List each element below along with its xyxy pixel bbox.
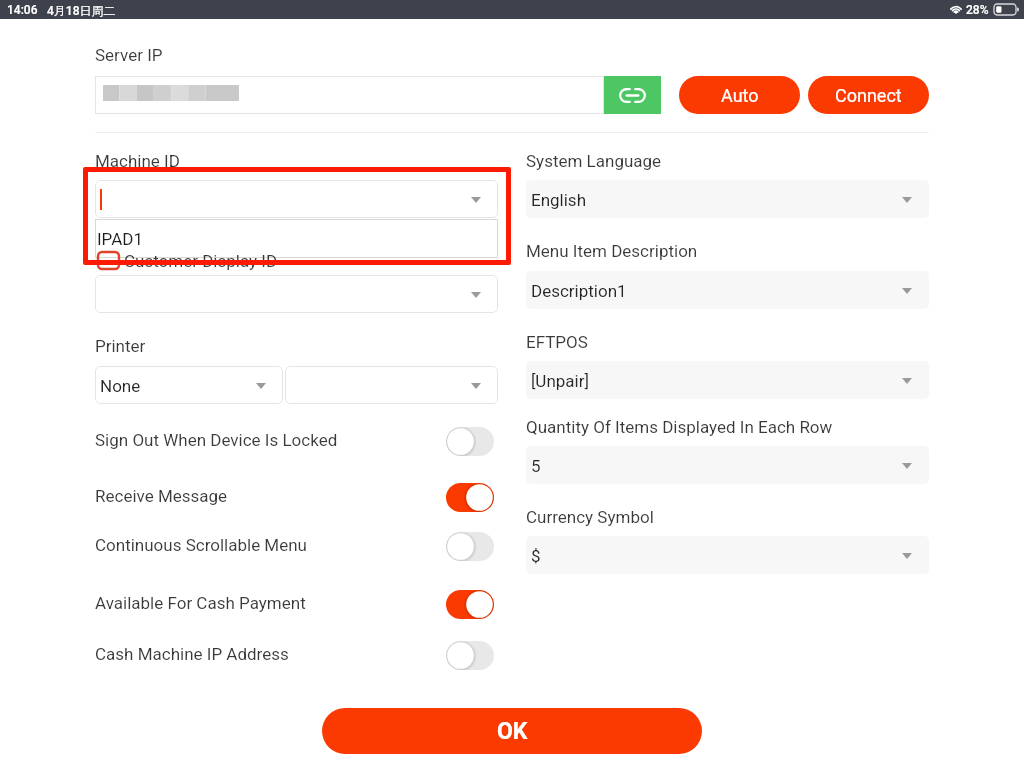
staticText: Currency Symbol <box>526 507 654 527</box>
staticText: Continuous Scrollable Menu <box>95 535 307 555</box>
button[interactable]: Receive Message <box>446 483 494 512</box>
button[interactable] <box>285 366 498 404</box>
staticText: Description1 <box>531 281 627 301</box>
staticText: 5 <box>531 456 541 476</box>
staticText: 28% <box>966 3 989 17</box>
staticText: System Language <box>526 151 662 171</box>
button[interactable]: Connect <box>808 76 929 114</box>
button[interactable]: Description1 <box>526 271 929 309</box>
staticText: Receive Message <box>95 486 228 506</box>
button[interactable]: 5 <box>526 446 929 484</box>
staticText: OK <box>497 718 528 745</box>
button[interactable]: OK <box>322 708 702 754</box>
staticText: English <box>531 190 587 210</box>
button[interactable]: IPAD1 <box>95 219 498 258</box>
staticText: Available For Cash Payment <box>95 593 306 613</box>
staticText: Quantity Of Items Displayed In Each Row <box>526 417 833 437</box>
staticText: IPAD1 <box>97 229 144 249</box>
button[interactable]: Available For Cash Payment <box>446 590 494 619</box>
staticText: None <box>100 376 141 396</box>
button[interactable]: English <box>526 180 929 218</box>
staticText: Menu Item Description <box>526 241 698 261</box>
button[interactable]: Cash Machine IP Address <box>446 641 494 670</box>
staticText: Machine ID <box>95 151 180 171</box>
button[interactable]: Sign Out When Device Is Locked <box>446 427 494 456</box>
button[interactable]: Link <box>604 76 661 114</box>
staticText: $ <box>531 546 541 566</box>
button[interactable]: Auto <box>679 76 800 114</box>
staticText: Server IP <box>95 45 163 65</box>
staticText: 14:06 <box>7 3 38 17</box>
staticText: Customer Display ID <box>124 251 278 271</box>
button[interactable]: None <box>95 366 283 404</box>
staticText: [Unpair] <box>531 371 589 391</box>
button[interactable]: Server IP address field <box>95 76 604 114</box>
staticText: EFTPOS <box>526 332 588 352</box>
staticText: Auto <box>721 85 759 106</box>
button[interactable] <box>95 275 498 313</box>
staticText: Sign Out When Device Is Locked <box>95 430 338 450</box>
button[interactable]: $ <box>526 536 929 574</box>
button[interactable]: [Unpair] <box>526 361 929 399</box>
staticText: Connect <box>835 85 902 106</box>
staticText: Cash Machine IP Address <box>95 644 289 664</box>
button[interactable]: Continuous Scrollable Menu <box>446 532 494 561</box>
button[interactable]: Machine ID <box>95 180 498 218</box>
staticText: 4月18日周二 <box>47 3 116 18</box>
staticText: Printer <box>95 336 146 356</box>
